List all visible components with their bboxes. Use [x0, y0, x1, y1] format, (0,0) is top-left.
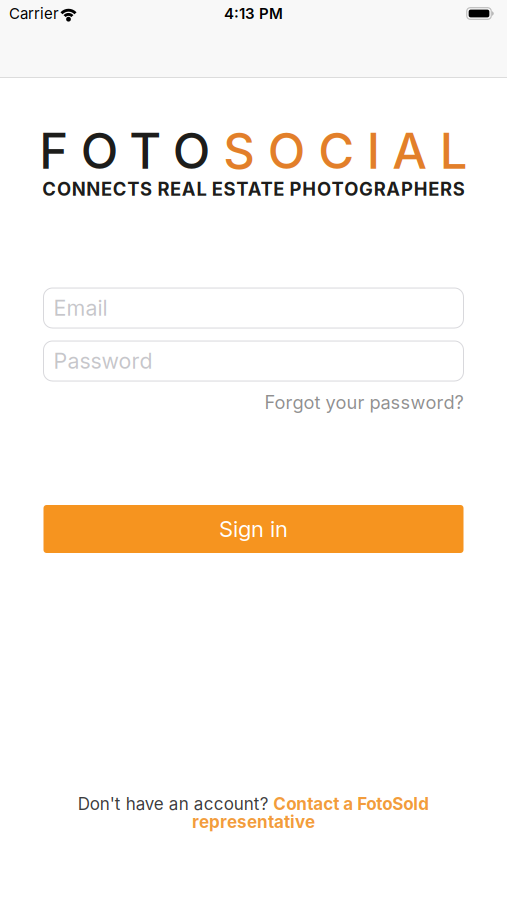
staticText: Contact a FotoSold [273, 793, 429, 814]
staticText: 4:13 PM [224, 4, 283, 22]
button[interactable]: Sign in [43, 505, 463, 553]
staticText: Carrier [9, 4, 59, 22]
button[interactable]: Don't have an account? [63, 790, 443, 834]
button[interactable]: Forgot your password? [43, 391, 463, 413]
staticText: representative [192, 811, 315, 832]
staticText: Sign in [219, 516, 288, 542]
staticText: Forgot your password? [264, 391, 463, 413]
staticText: Password [53, 348, 152, 374]
staticText: CONNECTS REAL ESTATE PHOTOGRAPHERS [42, 178, 465, 200]
staticText: FOTO [39, 121, 211, 181]
staticText: SOCIAL [223, 121, 468, 181]
staticText: Email [53, 295, 107, 321]
staticText: Don't have an account? [78, 793, 269, 814]
button[interactable]: Email [43, 288, 463, 328]
button[interactable]: Password [43, 341, 463, 381]
